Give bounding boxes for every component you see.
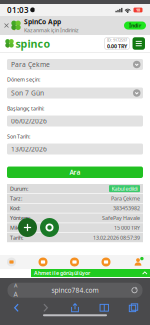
staticText: spinco [15, 36, 50, 51]
staticText: ID: 9172597 [107, 37, 127, 43]
staticText: Kazanmak için İndiriniz [24, 27, 79, 34]
staticText: Kod: [10, 205, 20, 212]
staticText: Para Çekme [111, 195, 140, 202]
staticText: spinco784.com [51, 286, 98, 295]
button[interactable]: Bookmarks [94, 301, 115, 314]
button[interactable]: Back [6, 301, 27, 314]
staticText: 01:03 [7, 5, 29, 15]
staticText: SafePay Havale [102, 214, 140, 222]
button[interactable]: Tabs [123, 301, 144, 314]
button[interactable]: Para Çekme [7, 59, 143, 70]
staticText: 0.00 TRY [107, 43, 127, 50]
button[interactable]: Add [18, 218, 37, 237]
staticText: Miktar: [10, 224, 27, 231]
staticText: 13.02.2026 08:57:39 [93, 234, 140, 241]
staticText: Durum: [10, 185, 28, 192]
staticText: Ara [69, 168, 80, 177]
staticText: 13/02/2026 [11, 145, 47, 153]
button[interactable]: Ara [7, 166, 143, 178]
staticText: Son 7 Gün [11, 89, 44, 97]
button[interactable]: WhatsApp [40, 218, 59, 237]
staticText: Ahmet ile görüşülüyor [34, 269, 90, 277]
staticText: 06/02/2026 [11, 117, 47, 125]
staticText: 383453982 [113, 205, 140, 212]
button[interactable]: Reload [126, 283, 142, 297]
staticText: A [13, 290, 17, 299]
button[interactable]: Ahmet ile görüşülüyor [31, 269, 150, 277]
button[interactable]: 06/02/2026 [7, 115, 143, 126]
button[interactable]: İndir [124, 21, 146, 29]
staticText: A [14, 282, 17, 289]
staticText: İndir [129, 22, 141, 29]
staticText: Yöntem: [10, 214, 30, 222]
button[interactable]: Son 7 Gün [7, 87, 143, 98]
button[interactable]: Share [64, 301, 85, 314]
staticText: Dönem seçin: [7, 76, 40, 83]
button[interactable]: Menu [132, 37, 145, 50]
staticText: 15 000 TRY [114, 224, 140, 231]
staticText: 10 [136, 7, 140, 13]
button[interactable]: ID: 9172597 [104, 37, 129, 49]
staticText: Son Tarih: [7, 133, 30, 140]
staticText: Para Çekme [11, 60, 50, 69]
button[interactable]: Close banner [2, 16, 11, 35]
staticText: SpinCo App [24, 17, 61, 26]
staticText: Tarz: [10, 195, 22, 202]
button[interactable]: Forward [35, 301, 56, 314]
staticText: Kabul edildi [111, 185, 137, 192]
staticText: Başlangıç tarihi: [7, 105, 44, 112]
button[interactable]: 13/02/2026 [7, 143, 143, 154]
button[interactable]: Page settings [7, 283, 23, 297]
staticText: Tarih: [10, 234, 23, 241]
